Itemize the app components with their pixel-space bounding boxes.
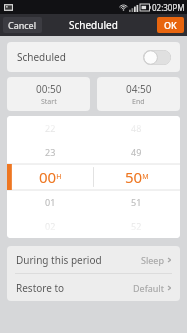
staticText: Sleep	[141, 254, 164, 266]
staticText: Default	[133, 282, 164, 294]
staticText: 02	[45, 220, 56, 232]
button[interactable]: Scheduled toggle	[143, 50, 171, 65]
button[interactable]: Cancel	[3, 17, 42, 33]
staticText: 51	[131, 196, 142, 208]
button[interactable]: 04:50	[97, 77, 180, 111]
staticText: 02:30PM	[152, 2, 185, 13]
button[interactable]: OK	[157, 17, 184, 33]
staticText: OK	[164, 19, 177, 31]
staticText: 04:50	[126, 82, 152, 96]
button[interactable]: Restore to	[7, 274, 180, 301]
button[interactable]: During this period	[7, 246, 180, 273]
staticText: 23	[45, 146, 56, 158]
button[interactable]: 51	[93, 190, 180, 214]
staticText: Scheduled	[69, 18, 118, 32]
button[interactable]: Scheduled	[7, 42, 180, 72]
button[interactable]: 49	[93, 140, 180, 164]
staticText: 52	[131, 220, 142, 232]
button[interactable]: 01	[7, 190, 93, 214]
staticText: End	[132, 97, 145, 107]
staticText: Start	[41, 97, 57, 107]
button[interactable]: 23	[7, 140, 93, 164]
staticText: 01	[45, 196, 56, 208]
staticText: 50M	[125, 167, 149, 187]
staticText: 00H	[39, 167, 62, 187]
staticText: Scheduled	[17, 50, 66, 64]
button[interactable]: 00:50	[7, 77, 90, 111]
staticText: Cancel	[8, 19, 37, 31]
button[interactable]: 00H	[7, 164, 93, 190]
staticText: 00:50	[36, 82, 62, 96]
staticText: During this period	[16, 253, 102, 267]
button[interactable]: 50M	[93, 164, 180, 190]
staticText: 22	[45, 122, 56, 134]
staticText: 48	[131, 122, 142, 134]
staticText: 49	[131, 146, 142, 158]
staticText: Restore to	[16, 281, 65, 295]
